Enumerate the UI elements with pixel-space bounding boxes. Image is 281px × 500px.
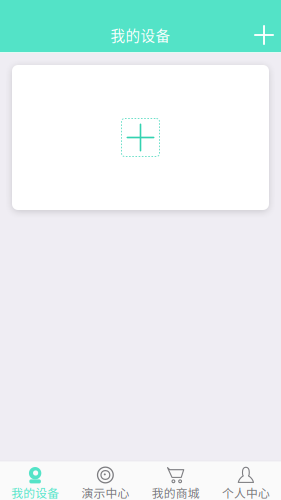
button[interactable]: 我的商城: [140, 462, 211, 500]
button[interactable]: 个人中心: [211, 462, 281, 500]
staticText: 我的设备: [11, 484, 59, 500]
button[interactable]: Add device: [247, 18, 281, 52]
button[interactable]: 演示中心: [70, 462, 140, 500]
staticText: 我的设备: [110, 24, 170, 45]
button[interactable]: 我的设备: [0, 462, 70, 500]
button[interactable]: Add device: [12, 65, 269, 210]
staticText: 个人中心: [222, 484, 270, 500]
staticText: 演示中心: [81, 484, 129, 500]
staticText: 我的商城: [152, 484, 200, 500]
